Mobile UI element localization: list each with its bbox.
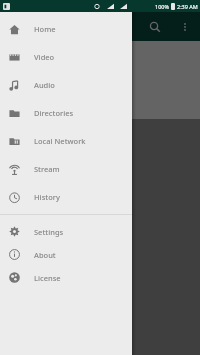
staticText: Audio [34,80,55,90]
staticText: 2:39 AM [177,3,198,10]
staticText: History [34,192,60,202]
staticText: Home [34,24,56,34]
button[interactable]: Local Network [0,127,132,155]
staticText: Local Network [34,136,86,146]
staticText: Stream [34,164,60,174]
staticText: Settings [34,227,64,237]
button[interactable]: About [0,243,132,266]
button[interactable]: Home [0,15,132,43]
button[interactable]: Audio [0,71,132,99]
staticText: [MoviesPortal.PK] [10,109,68,119]
button[interactable]: Stream [0,155,132,183]
button[interactable]: Search [143,15,167,39]
staticText: Directories [34,108,74,118]
staticText: Video [34,52,55,62]
staticText: License [34,273,61,283]
staticText: About [34,250,56,260]
staticText: 100% [155,3,170,10]
button[interactable]: Video [0,43,132,71]
button[interactable]: More options [173,15,197,39]
button[interactable]: Directories [0,99,132,127]
button[interactable]: Settings [0,220,132,243]
button[interactable]: History [0,183,132,211]
button[interactable]: License [0,266,132,289]
